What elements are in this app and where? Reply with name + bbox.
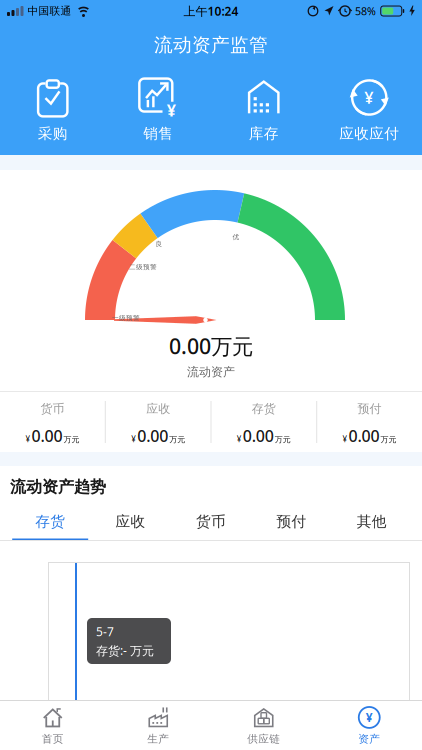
staticText: ¥: [131, 434, 136, 444]
staticText: 流动资产: [187, 365, 235, 379]
staticText: 万元: [169, 435, 185, 444]
staticText: 5-7: [96, 624, 114, 639]
staticText: ¥: [365, 89, 373, 106]
staticText: ¥: [366, 709, 373, 725]
staticText: 流动资产趋势: [10, 477, 106, 497]
staticText: 上午10:24: [183, 3, 238, 19]
staticText: 采购: [38, 124, 68, 142]
staticText: 0.00: [137, 425, 168, 446]
button[interactable]: 预付: [251, 506, 332, 540]
staticText: 二级预警: [129, 263, 157, 271]
staticText: 货币: [196, 512, 226, 530]
button[interactable]: 供应链: [211, 705, 316, 745]
staticText: 应收: [146, 401, 170, 416]
staticText: 生产: [147, 732, 169, 745]
staticText: ¥: [237, 434, 242, 444]
staticText: 一级预警: [112, 314, 140, 322]
staticText: 良: [155, 240, 162, 248]
staticText: 0.00: [31, 425, 62, 446]
button[interactable]: 库存: [211, 80, 316, 142]
staticText: 0.00万元: [169, 332, 253, 360]
staticText: 供应链: [247, 732, 280, 745]
staticText: 销售: [143, 124, 173, 142]
staticText: ¥: [25, 434, 30, 444]
button[interactable]: 存货: [10, 506, 90, 540]
staticText: 预付: [358, 401, 382, 416]
staticText: 资产: [358, 732, 380, 745]
staticText: 货币: [40, 401, 64, 416]
staticText: 中国联通: [27, 4, 71, 17]
staticText: 其他: [357, 512, 387, 530]
staticText: 预付: [276, 512, 306, 530]
staticText: 存货: [252, 401, 276, 416]
button[interactable]: 采购: [0, 80, 105, 142]
staticText: 优: [232, 233, 239, 241]
button[interactable]: 货币: [171, 506, 251, 540]
staticText: 万元: [275, 435, 291, 444]
staticText: 应收应付: [339, 124, 399, 142]
button[interactable]: 生产: [105, 705, 211, 745]
staticText: ¥: [165, 99, 173, 117]
staticText: 万元: [381, 435, 397, 444]
staticText: 0.00: [243, 425, 274, 446]
button[interactable]: ¥: [316, 80, 422, 142]
staticText: ¥: [343, 434, 348, 444]
button[interactable]: 首页: [0, 705, 105, 745]
button[interactable]: 5-7: [87, 618, 171, 664]
staticText: 存货:- 万元: [96, 642, 154, 658]
staticText: 58%: [355, 4, 376, 18]
staticText: 应收: [116, 512, 146, 530]
staticText: 存货: [35, 512, 65, 530]
staticText: 流动资产监管: [154, 33, 268, 56]
button[interactable]: ¥: [316, 705, 422, 745]
staticText: 万元: [63, 435, 79, 444]
button[interactable]: 应收: [90, 506, 171, 540]
staticText: 首页: [42, 732, 64, 745]
staticText: 0.00: [349, 425, 380, 446]
staticText: 库存: [249, 124, 279, 142]
button[interactable]: ¥: [105, 80, 211, 142]
button[interactable]: 其他: [332, 506, 412, 540]
